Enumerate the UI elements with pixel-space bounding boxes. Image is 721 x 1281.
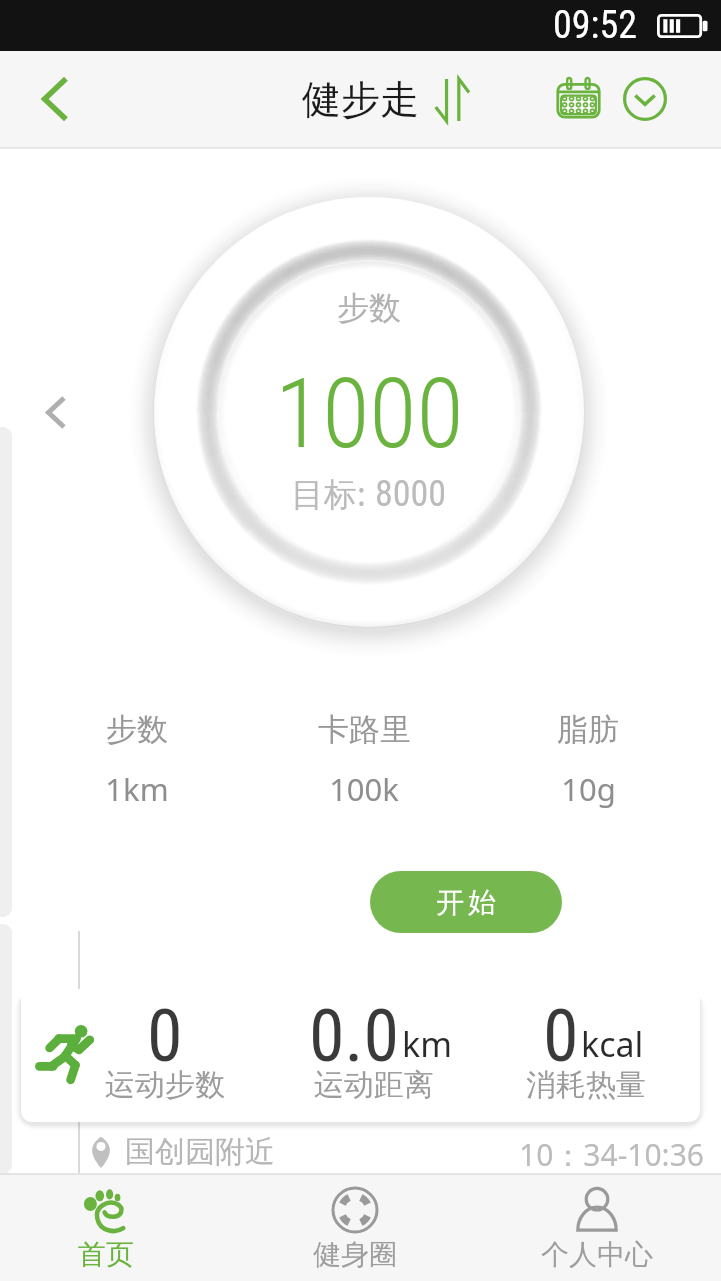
staticText: 8000 <box>375 473 447 515</box>
staticText: 脂肪 <box>557 710 619 749</box>
button[interactable]: 0 <box>21 989 700 1122</box>
staticText: 步数 <box>337 288 401 328</box>
staticText: 健步走 <box>302 75 419 124</box>
staticText: km <box>402 1021 452 1067</box>
button[interactable]: 个人中心 <box>487 1175 707 1281</box>
staticText: 目标: <box>291 471 366 516</box>
staticText: 步数 <box>106 710 168 749</box>
button[interactable]: Back <box>0 51 110 147</box>
staticText: 首页 <box>78 1237 134 1272</box>
staticText: 国创园附近 <box>125 1133 275 1171</box>
staticText: 卡路里 <box>318 710 411 749</box>
staticText: 运动步数 <box>105 1066 225 1104</box>
button[interactable]: 首页 <box>0 1175 216 1281</box>
staticText: 0 <box>147 994 183 1078</box>
staticText: 个人中心 <box>541 1237 653 1272</box>
staticText: kcal <box>581 1021 644 1067</box>
staticText: 100k <box>329 768 399 810</box>
button[interactable]: 健身圈 <box>245 1175 465 1281</box>
staticText: 消耗热量 <box>526 1066 646 1104</box>
staticText: 健身圈 <box>313 1237 397 1272</box>
staticText: 10：34-10:36 <box>519 1134 704 1175</box>
staticText: 0 <box>543 994 579 1078</box>
staticText: 10g <box>561 768 616 810</box>
button[interactable]: 开 <box>370 871 562 933</box>
button[interactable]: Expand <box>608 62 682 136</box>
staticText: 1000 <box>275 357 464 471</box>
staticText: 开 <box>436 885 464 920</box>
staticText: 09:52 <box>553 3 637 48</box>
button[interactable]: 国创园附近 <box>89 1133 275 1171</box>
staticText: 1km <box>105 768 169 810</box>
button[interactable]: Previous <box>26 370 84 454</box>
staticText: 始 <box>468 885 496 920</box>
staticText: 0.0 <box>309 994 400 1078</box>
staticText: 运动距离 <box>314 1066 434 1104</box>
button[interactable]: Calendar <box>541 62 615 136</box>
